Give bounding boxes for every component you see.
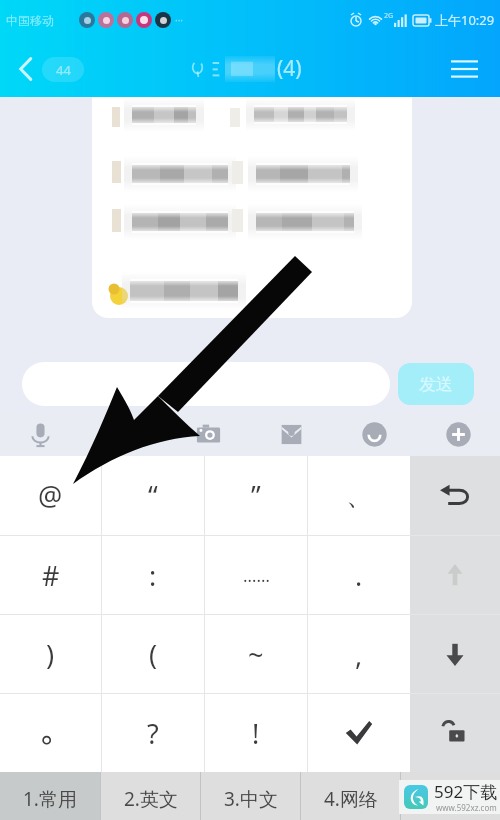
button[interactable]: ? bbox=[102, 694, 204, 772]
staticText: (4) bbox=[277, 54, 302, 83]
staticText: ··· bbox=[175, 13, 184, 27]
button[interactable]: Key bbox=[410, 615, 500, 693]
staticText: www.592xz.com bbox=[436, 802, 497, 813]
staticText: 3.中文 bbox=[224, 786, 278, 812]
staticText: 发送 bbox=[419, 374, 453, 395]
staticText: # bbox=[42, 557, 60, 594]
staticText: ) bbox=[46, 636, 55, 673]
button[interactable]: …… bbox=[205, 536, 307, 614]
button[interactable]: Key bbox=[410, 694, 500, 772]
staticText: 、 bbox=[346, 479, 373, 513]
button[interactable]: Voice bbox=[16, 413, 64, 456]
button[interactable]: 5.符号 bbox=[401, 772, 500, 820]
staticText: 5.符号 bbox=[424, 786, 478, 812]
button[interactable]: ( bbox=[102, 615, 204, 693]
button[interactable]: Camera bbox=[184, 413, 232, 456]
staticText: 1.常用 bbox=[23, 786, 77, 812]
staticText: . bbox=[355, 557, 363, 594]
staticText: 中国移动 bbox=[6, 13, 54, 28]
staticText: 上午10:29 bbox=[435, 11, 495, 29]
button[interactable] bbox=[92, 97, 412, 318]
other: Back bbox=[18, 56, 33, 82]
button[interactable]: @ bbox=[0, 456, 101, 535]
button[interactable] bbox=[22, 362, 390, 406]
button[interactable]: 、 bbox=[308, 456, 410, 535]
button[interactable] bbox=[308, 694, 410, 772]
button[interactable]: : bbox=[102, 536, 204, 614]
button[interactable]: # bbox=[0, 536, 101, 614]
button[interactable]: Key bbox=[410, 456, 500, 535]
staticText: ! bbox=[252, 715, 260, 752]
staticText: …… bbox=[243, 564, 270, 587]
staticText: : bbox=[149, 557, 157, 594]
button[interactable]: ~ bbox=[205, 615, 307, 693]
staticText: 4.网络 bbox=[324, 786, 378, 812]
button[interactable] bbox=[0, 694, 101, 772]
staticText: 2.英文 bbox=[124, 786, 178, 812]
button[interactable]: 4.网络 bbox=[301, 772, 400, 820]
staticText: 2G bbox=[384, 11, 394, 21]
staticText: ” bbox=[251, 477, 261, 514]
staticText: ? bbox=[147, 715, 159, 752]
button[interactable]: 发送 bbox=[398, 363, 474, 405]
button[interactable]: More bbox=[434, 413, 482, 456]
staticText: 592下载 bbox=[434, 780, 498, 803]
button[interactable]: ) bbox=[0, 615, 101, 693]
staticText: , bbox=[355, 636, 363, 673]
button[interactable]: Gallery bbox=[267, 413, 315, 456]
staticText: 44 bbox=[56, 61, 71, 79]
button[interactable]: 2.英文 bbox=[101, 772, 200, 820]
button[interactable]: Menu bbox=[447, 55, 482, 83]
button[interactable]: . bbox=[308, 536, 410, 614]
staticText: ~ bbox=[248, 636, 264, 673]
button[interactable]: 1.常用 bbox=[0, 772, 100, 820]
button[interactable]: Back bbox=[18, 56, 88, 82]
button[interactable]: ” bbox=[205, 456, 307, 535]
staticText: “ bbox=[148, 477, 158, 514]
staticText: @ bbox=[38, 477, 63, 514]
button[interactable]: ! bbox=[205, 694, 307, 772]
button[interactable]: , bbox=[308, 615, 410, 693]
button[interactable]: Emoji bbox=[350, 413, 398, 456]
button[interactable]: 3.中文 bbox=[201, 772, 300, 820]
button[interactable]: “ bbox=[102, 456, 204, 535]
staticText: ( bbox=[149, 636, 158, 673]
